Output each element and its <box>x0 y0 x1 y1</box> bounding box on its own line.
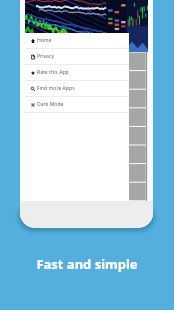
button[interactable]: Home <box>25 33 129 48</box>
staticText: Dark Mode <box>37 101 64 108</box>
staticText: Find more Apps <box>37 85 75 92</box>
button[interactable]: Find more Apps <box>25 81 129 96</box>
button[interactable]: Dark Mode <box>25 97 129 112</box>
button[interactable] <box>25 52 148 201</box>
button[interactable]: Rate this App <box>25 65 129 80</box>
button[interactable]: Privacy <box>25 49 129 64</box>
staticText: Home <box>37 37 52 44</box>
staticText: Fast and simple <box>0 255 174 273</box>
staticText: Privacy <box>37 53 54 60</box>
staticText: Rate this App <box>37 69 69 76</box>
